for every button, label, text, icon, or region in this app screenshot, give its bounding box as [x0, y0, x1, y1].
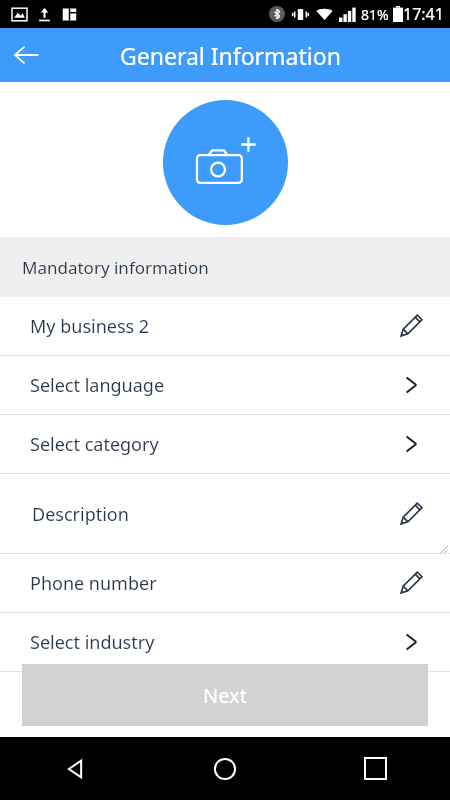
button[interactable]: Phone number — [0, 554, 450, 612]
button[interactable]: Add photo — [163, 100, 288, 225]
button[interactable]: Select language — [0, 356, 450, 414]
staticText: Mandatory information — [22, 256, 209, 279]
staticText: 17:41 — [403, 3, 444, 25]
button[interactable]: Back — [0, 737, 150, 800]
button[interactable]: Select industry — [0, 613, 450, 671]
staticText: Select industry — [30, 630, 394, 655]
staticText: Phone number — [30, 571, 394, 596]
button[interactable]: Description — [0, 474, 450, 553]
other: Open — [394, 625, 428, 659]
staticText: Description — [32, 502, 394, 527]
button[interactable]: Home — [150, 737, 300, 800]
staticText: My business 2 — [30, 314, 394, 339]
other: Open — [394, 427, 428, 461]
staticText: Next — [203, 682, 247, 709]
staticText: 81% — [361, 5, 389, 24]
staticText: General Information — [120, 40, 341, 71]
button[interactable]: Back — [0, 29, 52, 81]
other: Edit — [394, 566, 428, 600]
staticText: Select language — [30, 373, 394, 398]
other: Edit — [394, 497, 428, 531]
other: Edit — [394, 309, 428, 343]
other: Open — [394, 368, 428, 402]
button[interactable]: Recents — [300, 737, 450, 800]
button[interactable]: Select category — [0, 415, 450, 473]
button[interactable]: My business 2 — [0, 297, 450, 355]
button[interactable]: Next — [22, 664, 428, 726]
staticText: Select category — [30, 432, 394, 457]
